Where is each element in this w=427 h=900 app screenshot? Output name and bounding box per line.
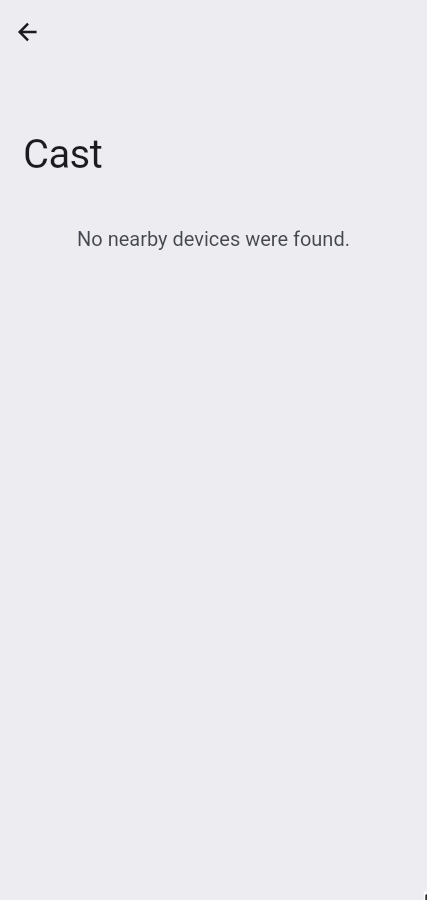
staticText: No nearby devices were found.	[24, 227, 403, 250]
staticText: Cast	[23, 131, 103, 178]
button[interactable]: Navigate up	[6, 8, 54, 56]
